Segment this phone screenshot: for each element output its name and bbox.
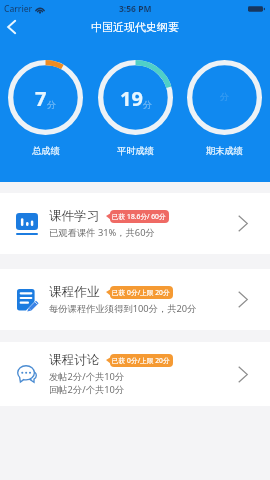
staticText: 分 (220, 91, 229, 102)
button[interactable]: Back (0, 16, 22, 38)
staticText: 分 (47, 99, 56, 110)
staticText: 已获 18.6分/ 60分 (112, 212, 166, 221)
staticText: 已获 0分/上限 20分 (112, 288, 170, 297)
staticText: 总成绩 (32, 145, 60, 157)
staticText: 已获 0分/上限 20分 (112, 356, 170, 365)
staticText: 分 (143, 99, 152, 110)
staticText: Carrier (4, 3, 33, 15)
staticText: 课程作业 (49, 284, 100, 300)
staticText: 期末成绩 (206, 145, 243, 157)
staticText: 19 (120, 85, 143, 112)
staticText: 平时成绩 (117, 145, 154, 157)
button[interactable]: 课程讨论 (0, 342, 270, 406)
button[interactable]: 课程作业 (0, 269, 270, 330)
staticText: 发帖2分/个共10分 (49, 370, 125, 383)
button[interactable]: 课件学习 (0, 193, 270, 254)
staticText: 3:56 PM (119, 3, 152, 15)
staticText: 已观看课件 31%，共60分 (49, 226, 155, 239)
staticText: 中国近现代史纲要 (91, 20, 179, 34)
staticText: 课程讨论 (49, 352, 100, 368)
staticText: 回帖2分/个共10分 (49, 383, 125, 396)
staticText: 课件学习 (49, 208, 100, 224)
staticText: 7 (35, 85, 47, 112)
staticText: 每份课程作业须得到100分，共20分 (49, 302, 197, 315)
